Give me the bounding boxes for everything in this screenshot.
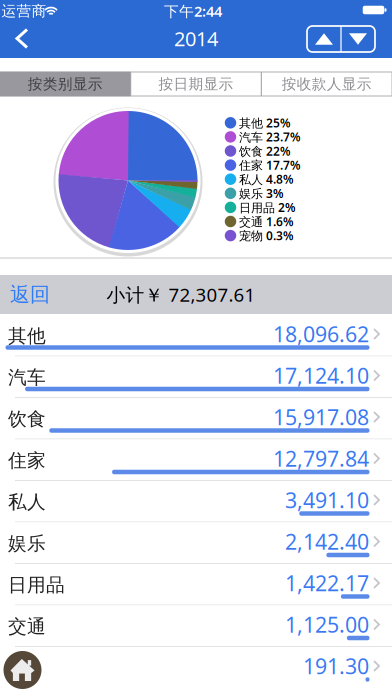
staticText: 其他	[8, 324, 46, 347]
staticText: 娱乐 3%	[239, 185, 284, 201]
staticText: 饮食	[8, 407, 46, 430]
button[interactable]: 私人	[0, 481, 392, 522]
staticText: 1,422.17	[285, 569, 369, 597]
staticText: 1,125.00	[285, 610, 369, 639]
staticText: 按收款人显示	[282, 75, 372, 93]
staticText: 返回	[10, 282, 50, 307]
button[interactable]: 其他	[0, 315, 392, 356]
button[interactable]: 191.30	[0, 647, 392, 688]
staticText: 娱乐	[8, 532, 46, 555]
button[interactable]: 按收款人显示	[262, 72, 391, 95]
staticText: 日用品 2%	[239, 199, 296, 215]
button[interactable]: 日用品	[0, 564, 392, 605]
button[interactable]: 返回	[7, 22, 37, 55]
staticText: 住家 17.7%	[239, 157, 301, 173]
staticText: 日用品	[8, 573, 65, 596]
staticText: 饮食 22%	[239, 143, 291, 159]
staticText: 15,917.08	[273, 403, 369, 431]
staticText: 小计￥ 72,307.61	[106, 282, 255, 307]
staticText: 17,124.10	[273, 361, 369, 390]
staticText: 其他 25%	[239, 115, 291, 131]
button[interactable]: 娱乐	[0, 522, 392, 564]
staticText: 交通	[8, 615, 46, 638]
staticText: 下午2:44	[164, 1, 222, 21]
staticText: 2014	[174, 25, 218, 52]
button[interactable]: 返回	[0, 275, 60, 314]
button[interactable]: 按类别显示	[0, 72, 130, 96]
staticText: 私人	[8, 490, 46, 513]
button[interactable]: 汽车	[0, 356, 392, 398]
staticText: 按日期显示	[158, 75, 233, 93]
staticText: 12,797.84	[273, 444, 369, 473]
staticText: 住家	[8, 449, 46, 472]
button[interactable]: 交通	[0, 605, 392, 647]
button[interactable]: 住家	[0, 439, 392, 481]
staticText: 私人 4.8%	[239, 171, 294, 187]
button[interactable]: 饮食	[0, 398, 392, 439]
staticText: 2,142.40	[285, 527, 369, 556]
staticText: 按类别显示	[28, 75, 103, 93]
button[interactable]: 上一年	[307, 26, 341, 52]
staticText: 宠物 0.3%	[239, 228, 294, 243]
button[interactable]: 主页	[3, 651, 41, 689]
staticText: 运营商	[1, 2, 46, 20]
staticText: 3,491.10	[285, 486, 369, 514]
staticText: 汽车	[8, 366, 46, 389]
staticText: 191.30	[303, 652, 369, 680]
staticText: 18,096.62	[273, 320, 369, 348]
staticText: 汽车 23.7%	[239, 129, 301, 145]
button[interactable]: 下一年	[341, 26, 375, 52]
button[interactable]: 按日期显示	[131, 72, 261, 95]
staticText: 交通 1.6%	[239, 213, 294, 229]
